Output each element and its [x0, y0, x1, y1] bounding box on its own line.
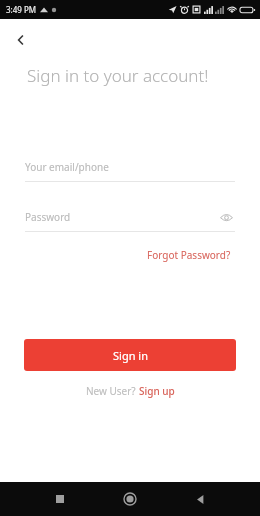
staticText: Forgot Password? [147, 248, 231, 262]
staticText: Your email/phone [25, 160, 109, 174]
button[interactable]: Forgot Password? [143, 244, 235, 266]
staticText: Sign in to your account! [27, 64, 209, 87]
staticText: New User? [86, 384, 139, 398]
button[interactable]: Your email/phone [25, 160, 235, 182]
button[interactable]: Sign up [139, 384, 175, 398]
button[interactable]: Recents [45, 484, 75, 514]
staticText: 3:49 PM [6, 4, 37, 15]
button[interactable]: Show password [217, 208, 235, 226]
button[interactable]: Sign in [24, 339, 236, 371]
staticText: Password [25, 210, 217, 224]
staticText: Sign up [139, 384, 175, 398]
staticText: Sign in [113, 348, 148, 363]
button[interactable]: Back [185, 484, 215, 514]
button[interactable]: Back [6, 25, 36, 55]
button[interactable]: Home [115, 484, 145, 514]
button[interactable]: Password [25, 208, 235, 226]
